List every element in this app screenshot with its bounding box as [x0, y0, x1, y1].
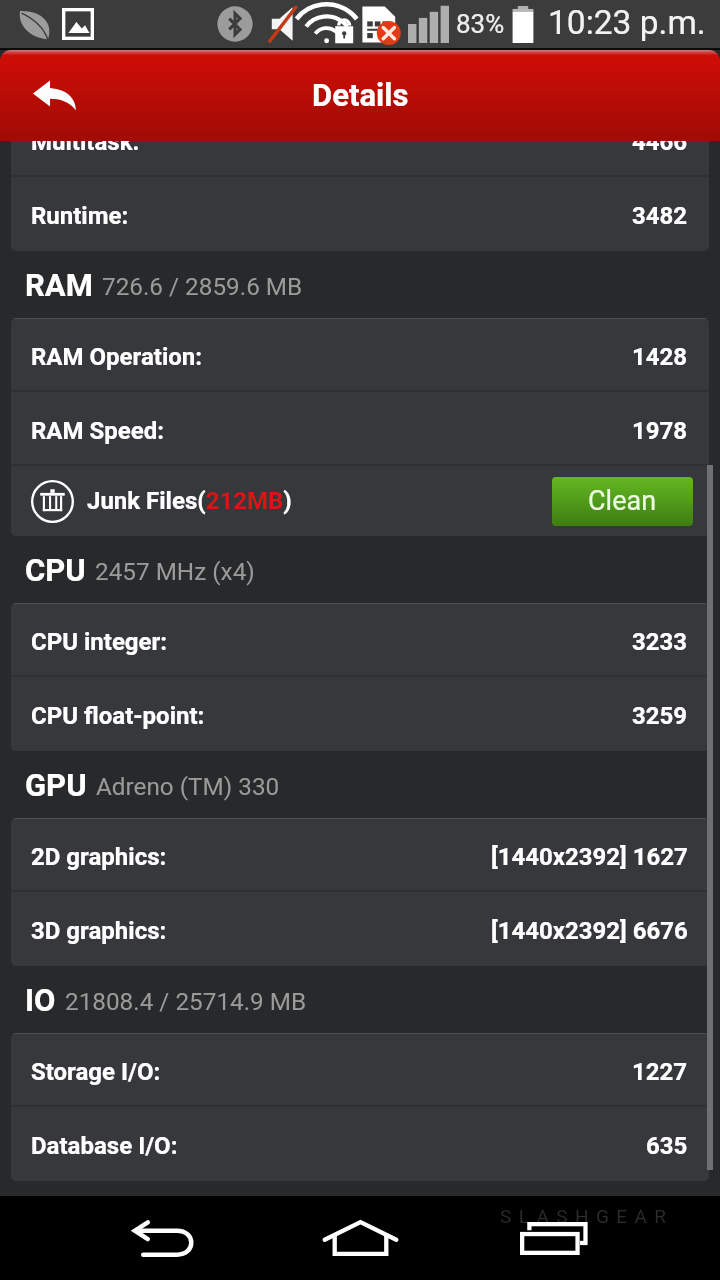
staticText: 1227 — [632, 1058, 688, 1086]
staticText: 1428 — [632, 343, 688, 371]
button[interactable]: Recent apps — [494, 1196, 614, 1280]
staticText: [1440x2392] 6676 — [491, 917, 688, 945]
staticText: [1440x2392] 1627 — [491, 843, 688, 871]
staticText: IO — [25, 982, 56, 1018]
staticText: Storage I/O: — [31, 1058, 161, 1086]
staticText: RAM Operation: — [31, 343, 203, 371]
staticText: 3259 — [632, 702, 688, 730]
button[interactable]: 3D graphics: — [11, 892, 709, 966]
staticText: 83% — [456, 9, 505, 39]
staticText: 726.6 / 2859.6 MB — [102, 272, 303, 300]
button[interactable]: RAM Speed: — [11, 392, 709, 466]
staticText: 3482 — [632, 202, 688, 230]
button[interactable]: CPU float-point: — [11, 677, 709, 751]
staticText: 635 — [646, 1132, 688, 1160]
button[interactable]: Runtime: — [11, 177, 709, 251]
staticText: 3D graphics: — [31, 917, 167, 945]
button[interactable]: Home — [300, 1196, 420, 1280]
staticText: Runtime: — [31, 202, 129, 230]
staticText: 3233 — [632, 628, 688, 656]
staticText: RAM Speed: — [31, 417, 164, 445]
staticText: 21808.4 / 25714.9 MB — [65, 987, 307, 1015]
staticText: 2457 MHz (x4) — [95, 557, 255, 585]
staticText: RAM — [25, 267, 93, 303]
staticText: 4466 — [632, 140, 688, 156]
button[interactable]: Junk Files(212MB) — [11, 466, 709, 536]
button[interactable]: Storage I/O: — [11, 1033, 709, 1107]
button[interactable]: RAM Operation: — [11, 318, 709, 392]
staticText: CPU — [25, 552, 86, 588]
staticText: CPU float-point: — [31, 702, 205, 730]
staticText: Adreno (TM) 330 — [96, 772, 280, 800]
staticText: 1978 — [632, 417, 688, 445]
staticText: Clean — [588, 485, 657, 517]
staticText: CPU integer: — [31, 628, 168, 656]
button[interactable]: Multitask: — [11, 140, 709, 177]
staticText: Database I/O: — [31, 1132, 178, 1160]
staticText: Details — [312, 77, 409, 113]
button[interactable]: Back — [17, 58, 91, 132]
staticText: GPU — [25, 767, 87, 803]
staticText: SLASHGEAR — [500, 1205, 674, 1227]
staticText: Multitask: — [31, 140, 140, 156]
staticText: 2D graphics: — [31, 843, 167, 871]
button[interactable]: Back — [106, 1196, 226, 1280]
staticText: 10:23 p.m. — [548, 3, 706, 42]
button[interactable]: Clean — [552, 477, 693, 526]
button[interactable]: Database I/O: — [11, 1107, 709, 1181]
button[interactable]: 2D graphics: — [11, 818, 709, 892]
button[interactable]: CPU integer: — [11, 603, 709, 677]
staticText: Junk Files(212MB) — [87, 487, 292, 515]
